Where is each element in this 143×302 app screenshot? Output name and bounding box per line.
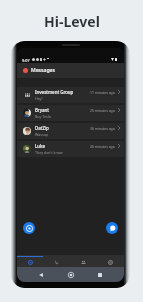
button[interactable]: Home — [66, 270, 76, 280]
staticText: 46 minutes ago — [90, 144, 115, 149]
button[interactable]: New message — [106, 222, 118, 234]
staticText: Hey! — [35, 96, 43, 101]
button[interactable]: Messages — [17, 63, 124, 78]
staticText: Bryant — [35, 107, 49, 113]
button[interactable]: Settings — [97, 255, 124, 267]
staticText: 9:07 — [22, 58, 30, 63]
button[interactable]: Chats — [17, 255, 43, 267]
button[interactable]: Recent apps — [95, 270, 105, 280]
button[interactable]: DatZip — [17, 123, 124, 139]
staticText: Wassup — [35, 132, 49, 137]
button[interactable]: People — [70, 255, 97, 267]
staticText: Luke — [35, 143, 46, 149]
button[interactable]: Luke — [17, 141, 124, 157]
staticText: DatZip — [35, 125, 49, 131]
staticText: Buy Tesla — [35, 114, 51, 119]
button[interactable]: Bryant — [17, 105, 124, 121]
staticText: 36 minutes ago — [90, 126, 115, 131]
staticText: Messages — [31, 67, 56, 74]
button[interactable]: Calls — [43, 255, 70, 267]
staticText: Hi-Level — [44, 12, 100, 31]
staticText: 11 minutes ago — [90, 90, 115, 95]
button[interactable]: New group — [23, 222, 35, 234]
staticText: Investment Group — [35, 89, 74, 95]
staticText: 25 minutes ago — [90, 108, 115, 113]
button[interactable]: Back — [36, 270, 46, 280]
staticText: They don't know — [35, 150, 63, 155]
button[interactable]: Investment Group — [17, 87, 124, 103]
